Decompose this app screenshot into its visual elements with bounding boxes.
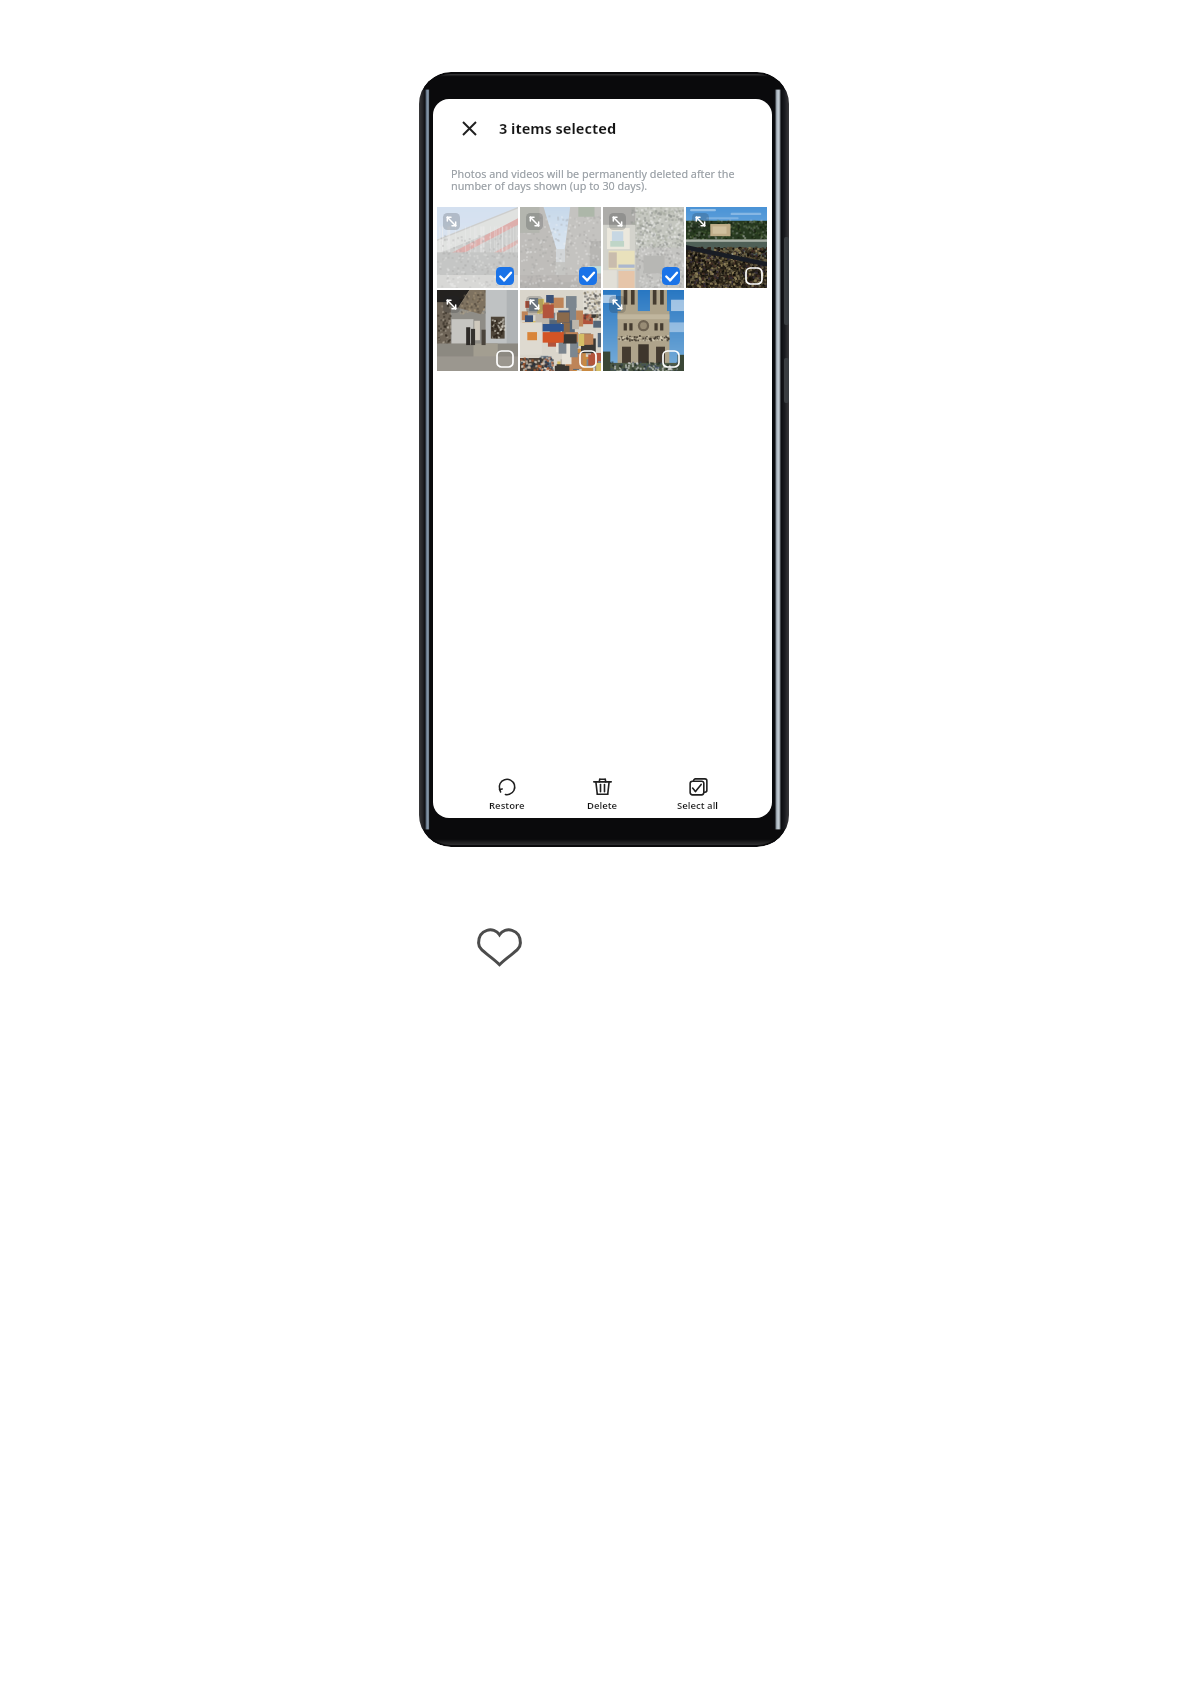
button[interactable]: Expand photo 4 xyxy=(692,213,709,230)
button[interactable]: Photo 7 xyxy=(603,290,684,371)
staticText: Restore xyxy=(489,799,525,812)
button[interactable]: Select photo 7 xyxy=(662,350,680,368)
button[interactable]: Selected xyxy=(662,267,680,285)
button[interactable]: Expand photo 2 xyxy=(526,213,543,230)
button[interactable]: Expand photo 3 xyxy=(609,213,626,230)
staticText: Photos and videos will be permanently de… xyxy=(451,166,742,193)
button[interactable]: Photo 5 xyxy=(437,290,518,371)
button[interactable]: Photo 3 xyxy=(603,207,684,288)
staticText: Delete xyxy=(587,799,618,812)
staticText: Select all xyxy=(677,799,719,812)
button[interactable]: Expand photo 7 xyxy=(609,296,626,313)
button[interactable]: Select photo 4 xyxy=(745,267,763,285)
button[interactable]: Select photo 6 xyxy=(579,350,597,368)
button[interactable]: Expand photo 5 xyxy=(443,296,460,313)
button[interactable]: Photo 4 xyxy=(686,207,767,288)
button[interactable]: Selected xyxy=(579,267,597,285)
button[interactable]: Selected xyxy=(496,267,514,285)
button[interactable]: Photo 2 xyxy=(520,207,601,288)
button[interactable]: Favourite xyxy=(477,926,522,971)
button[interactable]: Photo 1 xyxy=(437,207,518,288)
button[interactable]: Restore xyxy=(459,776,554,814)
button[interactable]: Select photo 5 xyxy=(496,350,514,368)
button[interactable]: Close xyxy=(455,114,483,142)
button[interactable]: Select all xyxy=(650,775,746,814)
staticText: 3 items selected xyxy=(499,118,617,138)
button[interactable]: Photo 6 xyxy=(520,290,601,371)
button[interactable]: Expand photo 1 xyxy=(443,213,460,230)
button[interactable]: Delete xyxy=(554,775,650,814)
button[interactable]: Expand photo 6 xyxy=(526,296,543,313)
